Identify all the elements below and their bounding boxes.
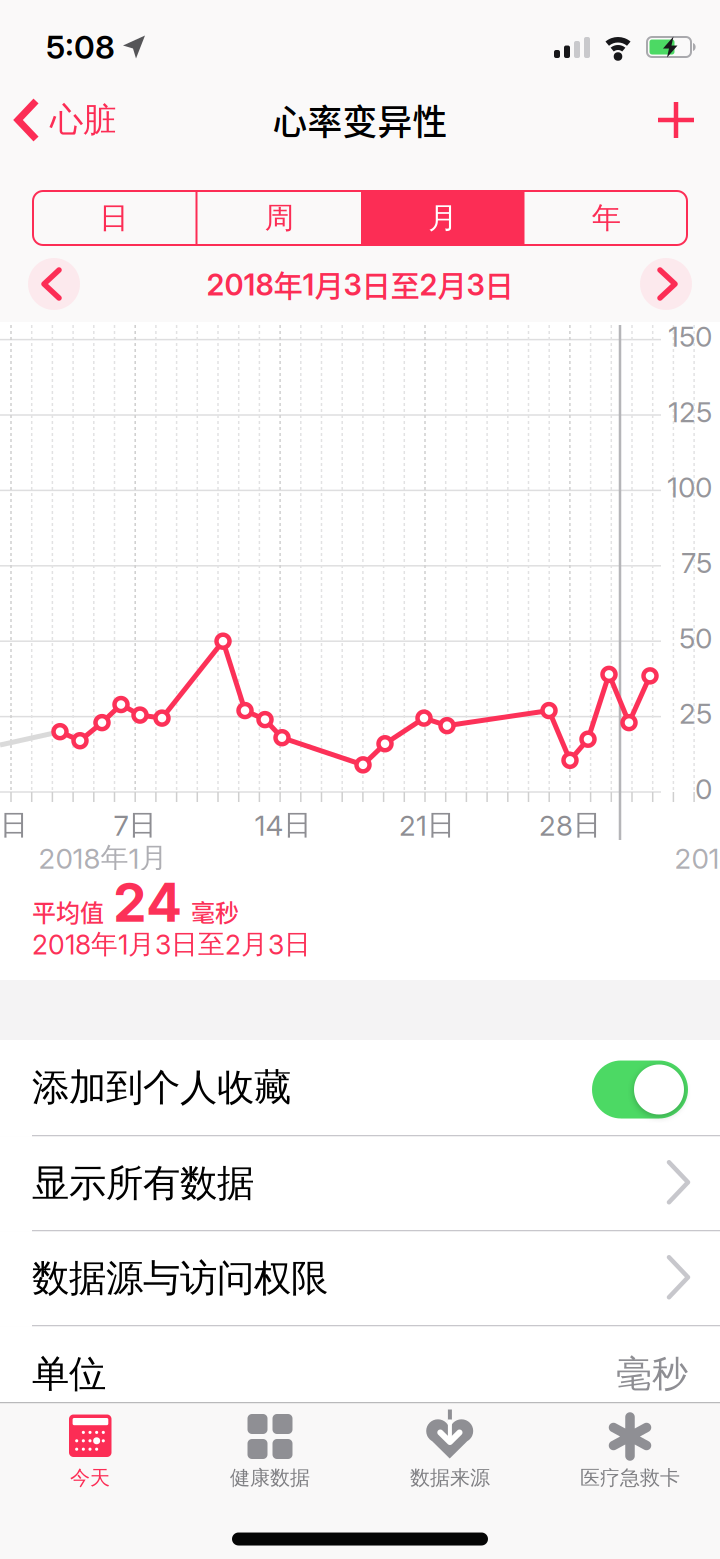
- staticText: 今天: [70, 1465, 110, 1490]
- staticText: 2018年2月: [674, 840, 720, 876]
- button[interactable]: 上一个时间段: [28, 258, 80, 310]
- staticText: 7日: [113, 807, 156, 843]
- staticText: 100: [667, 470, 712, 504]
- button[interactable]: 心脏: [0, 99, 116, 141]
- button[interactable]: 添加到个人收藏: [0, 1040, 720, 1135]
- staticText: 周: [265, 200, 294, 236]
- button[interactable]: 健康数据: [180, 1403, 360, 1490]
- staticText: 150: [668, 320, 712, 354]
- staticText: 5:08: [46, 28, 115, 66]
- staticText: 2018年1月3日至2月3日: [206, 263, 513, 305]
- staticText: 健康数据: [230, 1465, 310, 1490]
- staticText: 125: [668, 395, 712, 429]
- staticText: 医疗急救卡: [580, 1465, 680, 1490]
- button[interactable]: 单位: [0, 1326, 720, 1421]
- staticText: 75: [681, 546, 712, 580]
- staticText: 心脏: [50, 99, 116, 140]
- staticText: 单位: [32, 1351, 106, 1397]
- staticText: 24: [113, 870, 182, 934]
- staticText: 日: [0, 807, 28, 843]
- staticText: 添加到个人收藏: [32, 1065, 291, 1110]
- staticText: 心率变异性: [272, 95, 447, 145]
- staticText: 毫秒: [191, 894, 239, 929]
- button[interactable]: 周: [197, 190, 361, 246]
- staticText: 50: [679, 621, 712, 655]
- staticText: 平均值: [32, 894, 104, 929]
- staticText: 月: [428, 200, 457, 236]
- staticText: 0: [695, 772, 712, 806]
- button[interactable]: 数据来源: [360, 1403, 540, 1490]
- staticText: 2018年1月: [38, 840, 167, 876]
- staticText: 年: [592, 200, 621, 236]
- staticText: 14日: [254, 807, 311, 843]
- button[interactable]: 今天: [0, 1403, 180, 1490]
- staticText: 21日: [399, 807, 455, 843]
- staticText: 28日: [539, 807, 601, 843]
- button[interactable]: 年: [524, 190, 688, 246]
- button[interactable]: 显示所有数据: [0, 1136, 720, 1230]
- button[interactable]: 日: [32, 190, 195, 246]
- button[interactable]: 医疗急救卡: [540, 1403, 720, 1490]
- staticText: 2018年1月3日至2月3日: [32, 927, 311, 961]
- staticText: 毫秒: [616, 1352, 688, 1396]
- staticText: 数据来源: [410, 1465, 490, 1490]
- button[interactable]: 添加数据: [658, 102, 720, 138]
- staticText: 25: [679, 697, 712, 731]
- staticText: 日: [99, 200, 128, 236]
- button[interactable]: 月: [361, 190, 524, 246]
- staticText: 数据源与访问权限: [32, 1255, 328, 1301]
- button[interactable]: 数据源与访问权限: [0, 1231, 720, 1325]
- staticText: 显示所有数据: [32, 1160, 254, 1206]
- button[interactable]: 下一个时间段: [640, 258, 692, 310]
